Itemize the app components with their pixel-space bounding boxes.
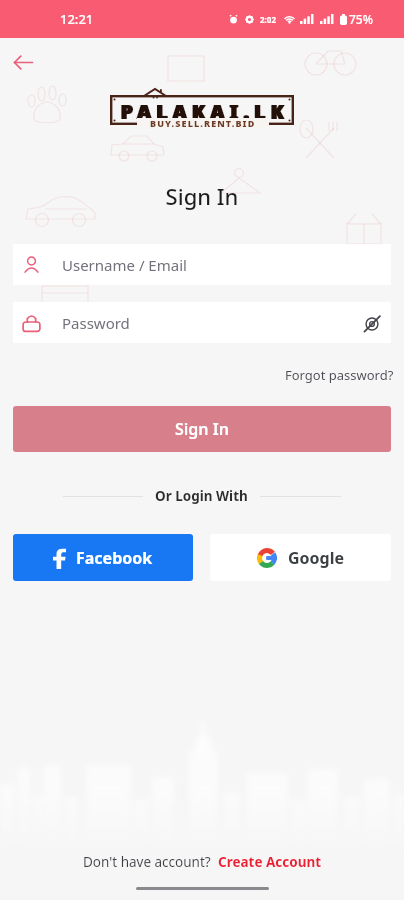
staticText: Password xyxy=(62,313,130,333)
staticText: Username / Email xyxy=(62,255,187,275)
staticText: Facebook xyxy=(76,547,153,569)
staticText: PALAKAI.LK xyxy=(114,99,298,125)
button[interactable]: Sign In xyxy=(13,406,391,452)
staticText: Google xyxy=(288,547,345,569)
button[interactable]: Create Account xyxy=(218,853,322,871)
button[interactable]: Username / Email xyxy=(13,244,391,285)
button[interactable]: Forgot password? xyxy=(285,366,394,384)
staticText: Sign In xyxy=(175,418,229,440)
staticText: 12:21 xyxy=(60,10,94,28)
button[interactable]: Facebook xyxy=(13,534,193,581)
staticText: BUY.SELL.RENT.BID xyxy=(150,117,256,129)
staticText: Forgot password? xyxy=(285,366,394,384)
staticText: 75% xyxy=(349,11,373,27)
button[interactable]: Password xyxy=(13,302,391,343)
button[interactable]: Google xyxy=(210,534,391,581)
staticText: Create Account xyxy=(218,853,322,871)
button[interactable]: Back xyxy=(6,45,40,79)
staticText: PALAKAI.LK xyxy=(112,99,296,125)
staticText: Sign In xyxy=(0,181,404,211)
staticText: Or Login With xyxy=(155,487,248,505)
staticText: Don't have account? xyxy=(83,853,218,871)
staticText: 2:02 xyxy=(260,14,276,25)
button[interactable]: Show password xyxy=(354,305,390,341)
staticText: PALAKAI.LK xyxy=(113,99,297,125)
